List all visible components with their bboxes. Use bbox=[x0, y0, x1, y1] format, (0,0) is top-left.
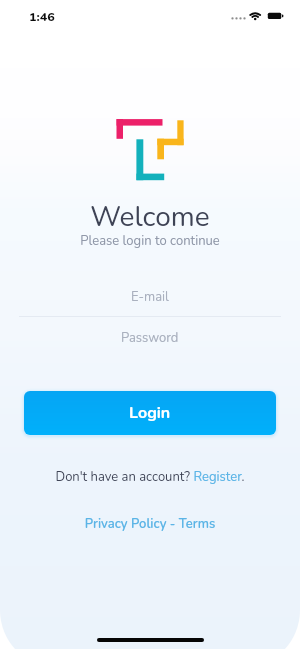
staticText: E-mail bbox=[131, 288, 169, 306]
staticText: Privacy Policy - Terms bbox=[0, 515, 300, 533]
staticText: Don't have an account? Register. bbox=[0, 468, 300, 486]
staticText: 1:46 bbox=[29, 8, 55, 25]
button[interactable]: Login bbox=[24, 391, 276, 435]
button[interactable]: E-mail bbox=[19, 288, 281, 317]
staticText: Welcome bbox=[0, 198, 300, 236]
button[interactable]: Password bbox=[19, 329, 281, 357]
other: App logo bbox=[116, 119, 186, 183]
other: Wi-Fi bbox=[248, 9, 264, 23]
other: Cellular signal bbox=[231, 15, 249, 22]
staticText: Please login to continue bbox=[0, 232, 300, 250]
staticText: Password bbox=[121, 329, 179, 347]
staticText: Login bbox=[129, 402, 171, 424]
other: Battery bbox=[267, 11, 285, 21]
